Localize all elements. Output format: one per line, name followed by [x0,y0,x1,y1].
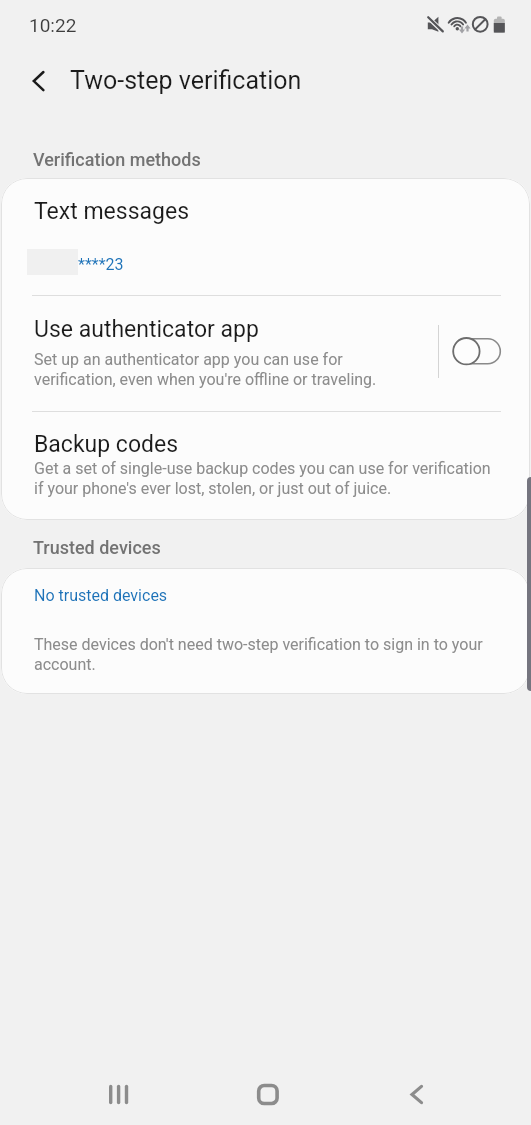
staticText: Trusted devices [33,537,161,558]
staticText: 10:22 [29,14,77,36]
button[interactable]: Use authenticator app [1,295,437,411]
button[interactable]: Text messages [1,178,530,295]
staticText: Verification methods [33,149,201,170]
staticText: ****23 [78,255,124,274]
staticText: Set up an authenticator app you can use … [34,349,377,389]
staticText: No trusted devices [34,586,168,605]
staticText: These devices don't need two-step verifi… [34,634,483,674]
staticText: Get a set of single-use backup codes you… [34,458,491,498]
staticText: Two-step verification [70,66,302,95]
button[interactable]: Recent apps [92,1068,146,1122]
button[interactable]: Back [390,1068,444,1122]
button[interactable]: Use authenticator app toggle [447,320,509,382]
staticText: Backup codes [34,431,179,458]
button[interactable]: Navigate back [14,56,62,104]
button[interactable]: Backup codes [1,411,530,520]
button[interactable]: Home [241,1068,295,1122]
staticText: Use authenticator app [34,316,259,343]
staticText: Text messages [34,198,190,225]
button[interactable]: No trusted devices [1,568,530,694]
